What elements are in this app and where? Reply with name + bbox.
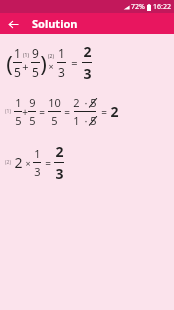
staticText: 10 <box>48 95 61 110</box>
staticText: 72% <box>131 2 145 12</box>
staticText: Solution <box>32 16 78 31</box>
staticText: 2 <box>83 42 92 61</box>
staticText: 1 <box>73 113 80 128</box>
staticText: 3 <box>34 164 41 179</box>
button[interactable]: Back <box>4 15 22 33</box>
staticText: 5 <box>90 95 97 110</box>
staticText: 9 <box>29 95 36 110</box>
staticText: 3 <box>58 64 65 80</box>
staticText: (2) <box>5 159 11 166</box>
staticText: 1 <box>14 45 21 61</box>
staticText: (1) <box>23 52 29 59</box>
staticText: 1 <box>58 45 65 61</box>
staticText: 2 <box>55 142 64 161</box>
staticText: · <box>80 95 89 110</box>
staticText: 2 <box>73 95 80 110</box>
staticText: 3 <box>83 64 92 83</box>
staticText: 9 <box>32 45 39 61</box>
staticText: 5 <box>90 113 97 128</box>
staticText: 5 <box>14 64 21 80</box>
staticText: + <box>22 59 29 74</box>
staticText: = <box>64 105 70 119</box>
staticText: 5 <box>29 113 36 128</box>
staticText: × <box>48 60 54 72</box>
staticText: 2 <box>14 153 23 172</box>
staticText: = <box>101 105 107 119</box>
staticText: 1 <box>15 95 22 110</box>
staticText: = <box>71 55 78 70</box>
staticText: + <box>22 105 28 119</box>
staticText: 2 <box>110 102 119 121</box>
staticText: = <box>45 156 51 170</box>
staticText: ( <box>6 48 13 78</box>
staticText: · <box>80 113 89 128</box>
staticText: 5 <box>15 113 22 128</box>
staticText: 5 <box>51 113 58 128</box>
staticText: 5 <box>32 64 39 80</box>
staticText: × <box>25 157 31 169</box>
staticText: 3 <box>55 164 64 183</box>
staticText: = <box>39 105 45 119</box>
staticText: (2) <box>48 53 54 60</box>
staticText: ) <box>40 48 47 78</box>
staticText: 1 <box>34 146 41 161</box>
staticText: (1) <box>5 108 11 115</box>
staticText: 16:22 <box>153 2 171 12</box>
